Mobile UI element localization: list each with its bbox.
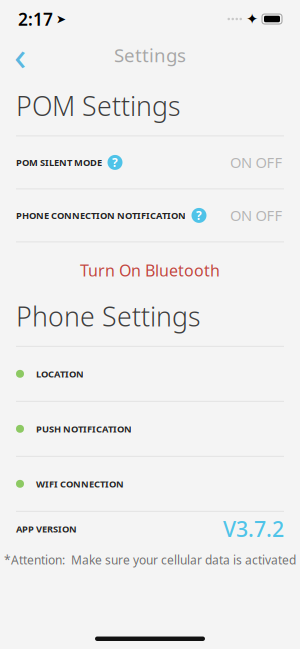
staticText: Phone Settings (16, 298, 201, 334)
staticText: ? (112, 154, 118, 170)
staticText: ✦ (246, 11, 258, 27)
button[interactable]: Turn On Bluetooth (0, 242, 300, 298)
button[interactable]: PUSH NOTIFICATION (0, 402, 300, 456)
button[interactable]: Back (0, 35, 40, 75)
staticText: WIFI CONNECTION (36, 478, 124, 490)
staticText: Settings (114, 43, 186, 67)
staticText: POM SILENT MODE (16, 156, 102, 169)
staticText: OFF (255, 206, 282, 225)
staticText: 2:17 (18, 7, 53, 30)
staticText: PUSH NOTIFICATION (36, 423, 132, 435)
button[interactable]: Help about PHONE CONNECTION NOTIFICATION (186, 202, 212, 228)
button[interactable]: OFF (254, 202, 284, 228)
staticText: APP VERSION (16, 523, 77, 535)
staticText: V3.7.2 (223, 515, 284, 543)
staticText: OFF (255, 153, 282, 172)
staticText: LOCATION (36, 368, 84, 380)
staticText: Turn On Bluetooth (80, 260, 220, 281)
staticText: ON (230, 153, 252, 172)
staticText: *Attention: Make sure your cellular data… (4, 552, 296, 568)
button[interactable]: ON (228, 149, 254, 175)
button[interactable]: ON (228, 202, 254, 228)
staticText: POM Settings (16, 88, 181, 123)
button[interactable]: LOCATION (0, 347, 300, 401)
staticText: PHONE CONNECTION NOTIFICATION (16, 209, 186, 222)
staticText: ➤ (56, 12, 66, 26)
button[interactable]: WIFI CONNECTION (0, 457, 300, 511)
staticText: ? (196, 207, 202, 223)
button[interactable]: OFF (254, 149, 284, 175)
button[interactable]: Help about POM SILENT MODE (102, 149, 128, 175)
staticText: ‹ (14, 28, 26, 81)
staticText: ON (230, 206, 252, 225)
